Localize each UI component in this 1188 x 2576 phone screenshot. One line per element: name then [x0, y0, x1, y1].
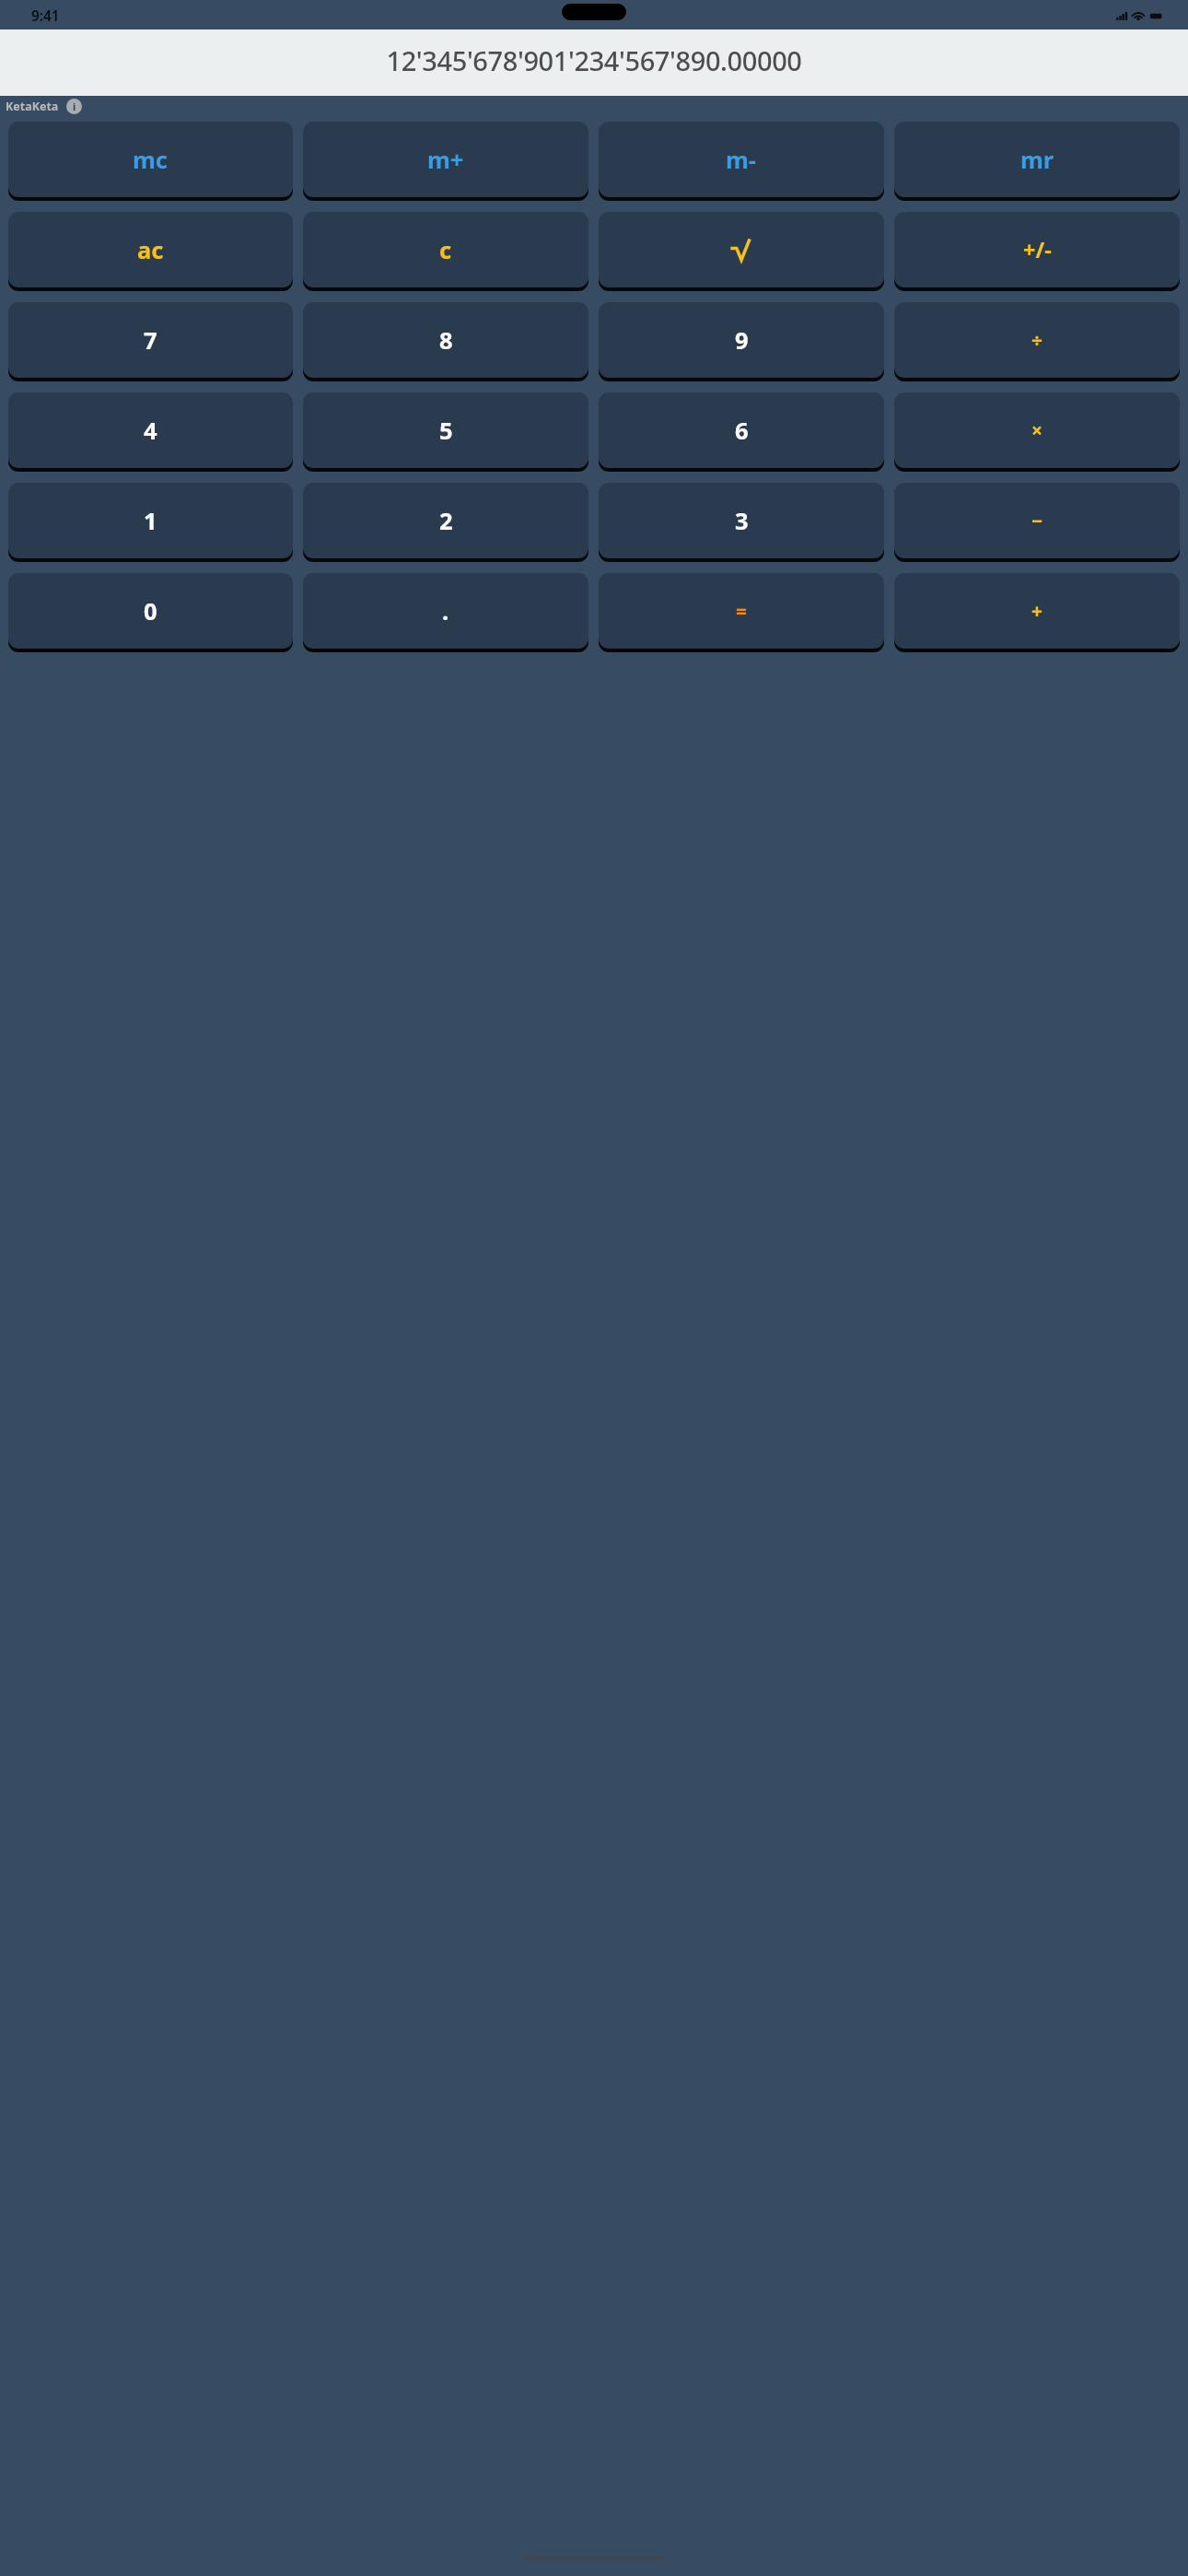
button[interactable]: mr	[894, 122, 1180, 197]
staticText: 2	[439, 505, 453, 537]
button[interactable]: 5	[303, 392, 588, 468]
staticText: mc	[133, 144, 169, 176]
staticText: 8	[439, 324, 453, 357]
staticText: ÷	[1031, 327, 1042, 353]
staticText: KetaKeta	[6, 99, 59, 114]
button[interactable]: 9	[599, 302, 884, 378]
staticText: i	[73, 100, 76, 113]
staticText: 12'345'678'901'234'567'890.00000	[7, 42, 1181, 78]
staticText: −	[1031, 508, 1043, 533]
button[interactable]: 7	[8, 302, 293, 378]
staticText: 6	[735, 415, 749, 447]
button[interactable]: ac	[8, 212, 293, 287]
button[interactable]: 2	[303, 483, 588, 558]
button[interactable]: m+	[303, 122, 588, 197]
staticText: mr	[1020, 144, 1054, 176]
button[interactable]: −	[894, 483, 1180, 558]
button[interactable]	[599, 212, 884, 287]
staticText: 3	[735, 505, 749, 537]
staticText: 0	[144, 595, 157, 627]
button[interactable]: 4	[8, 392, 293, 468]
button[interactable]: 1	[8, 483, 293, 558]
staticText: 9:41	[31, 6, 60, 26]
button[interactable]: +	[894, 573, 1180, 649]
staticText: 4	[144, 415, 157, 447]
staticText: 5	[439, 415, 453, 447]
staticText: m-	[726, 144, 757, 176]
staticText: ac	[137, 234, 164, 266]
staticText: =	[736, 598, 747, 624]
staticText: ×	[1031, 417, 1042, 443]
button[interactable]: c	[303, 212, 588, 287]
button[interactable]: 8	[303, 302, 588, 378]
button[interactable]: 3	[599, 483, 884, 558]
button[interactable]: =	[599, 573, 884, 649]
button[interactable]: 6	[599, 392, 884, 468]
button[interactable]: mc	[8, 122, 293, 197]
staticText: +	[1031, 598, 1042, 624]
staticText: 9	[735, 324, 749, 357]
staticText: 1	[144, 505, 157, 537]
button[interactable]: ÷	[894, 302, 1180, 378]
button[interactable]: .	[303, 573, 588, 649]
button[interactable]: 0	[8, 573, 293, 649]
staticText: .	[442, 595, 449, 627]
button[interactable]: ×	[894, 392, 1180, 468]
staticText: +/-	[1023, 235, 1052, 264]
staticText: 7	[144, 324, 157, 357]
staticText: m+	[427, 144, 464, 176]
button[interactable]: Info	[66, 99, 82, 114]
staticText: c	[439, 234, 452, 266]
button[interactable]: m-	[599, 122, 884, 197]
button[interactable]: +/-	[894, 212, 1180, 287]
